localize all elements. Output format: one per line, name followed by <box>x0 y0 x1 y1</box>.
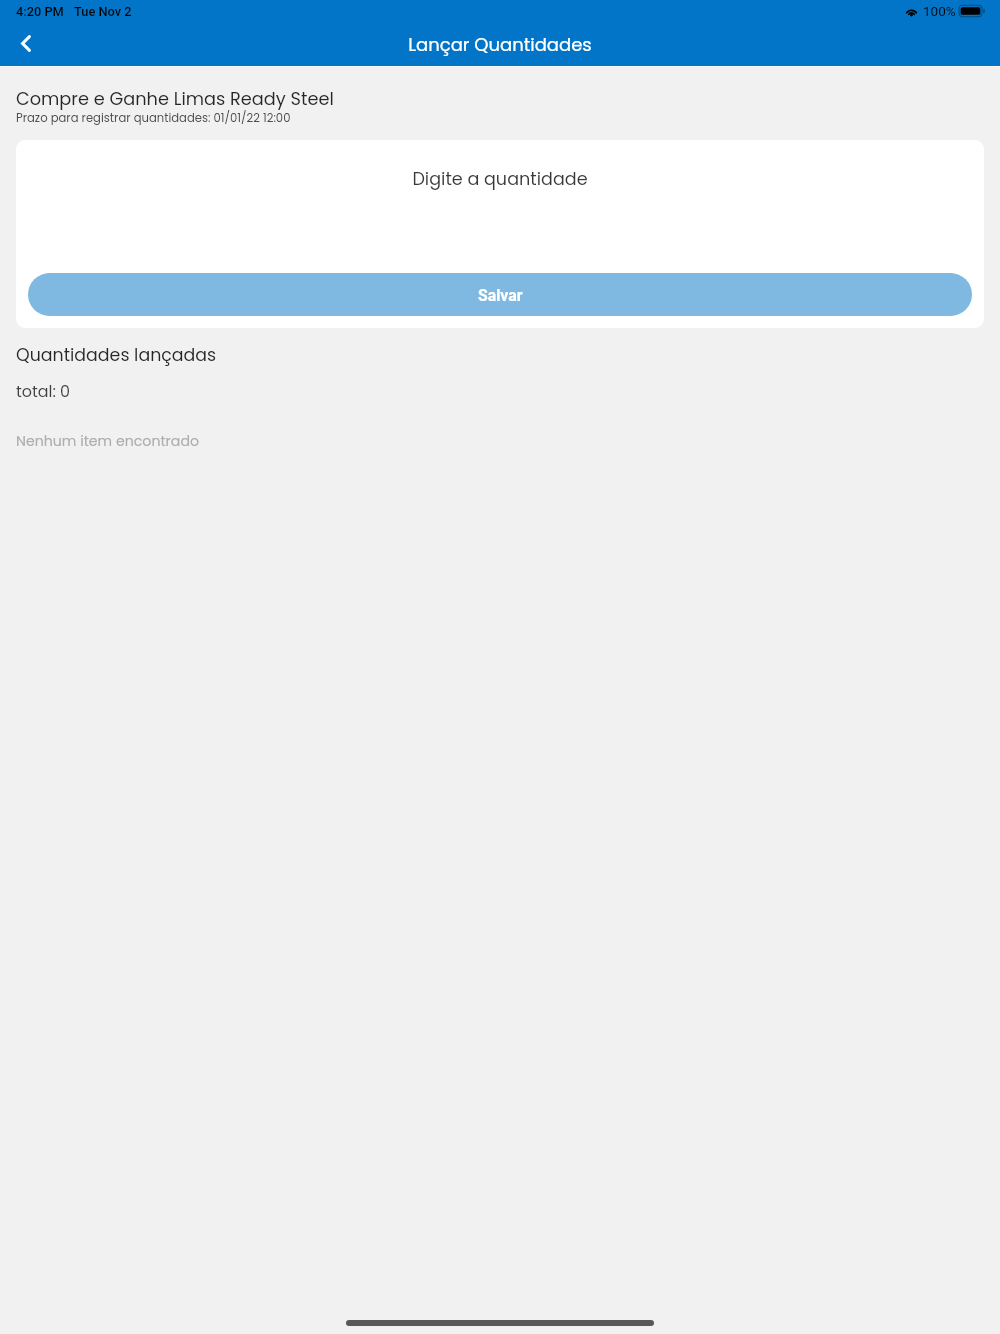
staticText: 4:20 PM <box>16 4 64 19</box>
button[interactable]: Back <box>4 21 48 65</box>
staticText: 100% <box>923 3 956 19</box>
staticText: Salvar <box>478 286 523 305</box>
staticText: total: 0 <box>16 380 70 402</box>
staticText: Tue Nov 2 <box>74 4 132 19</box>
staticText: Prazo para registrar quantidades: 01/01/… <box>16 110 291 126</box>
staticText: Digite a quantidade <box>16 167 984 192</box>
staticText: Nenhum item encontrado <box>16 431 200 451</box>
staticText: Lançar Quantidades <box>0 32 1000 57</box>
staticText: Compre e Ganhe Limas Ready Steel <box>16 86 334 111</box>
button[interactable]: Salvar <box>28 273 972 316</box>
staticText: Quantidades lançadas <box>16 343 217 367</box>
